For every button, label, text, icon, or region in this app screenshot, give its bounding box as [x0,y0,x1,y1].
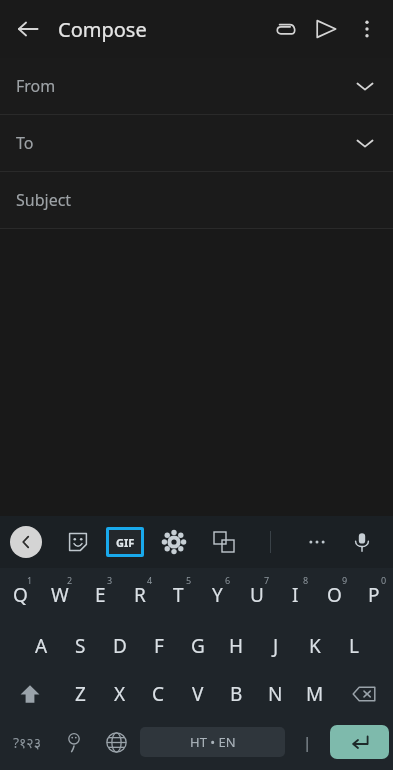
button[interactable]: Z [60,670,100,718]
button[interactable]: R [120,568,159,622]
button[interactable]: Enter [330,725,389,759]
staticText: E [95,582,106,608]
staticText: 8 [303,574,309,586]
button[interactable]: H [217,622,256,670]
staticText: 6 [225,574,231,586]
staticText: To [16,132,34,154]
button[interactable]: I [276,568,315,622]
button[interactable]: Q [0,568,40,622]
staticText: O [327,582,342,608]
button[interactable]: Backspace [334,670,393,718]
button[interactable]: To [0,115,393,171]
staticText: Subject [16,189,72,211]
button[interactable]: W [40,568,80,622]
button[interactable]: Subject [0,172,393,228]
button[interactable]: J [256,622,295,670]
button[interactable]: More [299,524,335,560]
staticText: K [309,633,321,659]
button[interactable]: X [100,670,139,718]
staticText: GIF [116,535,135,550]
button[interactable]: M [295,670,334,718]
staticText: V [192,681,204,707]
button[interactable]: K [295,622,334,670]
staticText: P [368,582,380,608]
button[interactable]: Send [305,8,347,50]
button[interactable]: Space [140,727,285,757]
button[interactable]: Settings [156,524,192,560]
staticText: 2 [67,574,73,586]
button[interactable]: Emoji [53,718,95,766]
button[interactable]: Voice input [343,523,381,561]
button[interactable]: C [139,670,178,718]
button[interactable]: A [21,622,61,670]
staticText: D [113,633,127,659]
button[interactable]: Back [6,7,50,51]
button[interactable]: E [80,568,120,622]
staticText: G [191,633,205,659]
staticText: J [273,633,279,659]
button[interactable]: V [178,670,217,718]
staticText: R [134,582,146,608]
staticText: 5 [186,574,192,586]
button[interactable]: O [315,568,354,622]
staticText: N [268,681,283,707]
staticText: ?१२३ [13,733,41,752]
staticText: 0 [381,574,387,586]
button[interactable]: More options [347,9,387,49]
staticText: L [349,633,359,659]
staticText: T [173,582,184,608]
staticText: F [154,633,164,659]
button[interactable]: B [217,670,256,718]
staticText: From [16,75,56,97]
staticText: H [229,633,244,659]
button[interactable]: Translate [206,524,242,560]
staticText: 4 [147,574,153,586]
button[interactable]: GIF [109,530,141,554]
staticText: U [250,582,264,608]
staticText: A [35,633,48,659]
button[interactable]: S [61,622,100,670]
staticText: | [303,732,312,752]
button[interactable]: Y [198,568,237,622]
button[interactable]: L [334,622,373,670]
staticText: W [51,582,69,608]
button[interactable]: Change language [95,718,137,766]
button[interactable]: D [100,622,139,670]
staticText: S [75,633,86,659]
button[interactable]: G [178,622,217,670]
button[interactable]: From [0,58,393,114]
button[interactable]: Attach file [263,8,305,50]
button[interactable]: T [159,568,198,622]
button[interactable]: ?१२३ [0,718,53,766]
staticText: HT • EN [190,733,236,751]
staticText: Q [13,582,28,608]
staticText: 1 [27,574,33,586]
staticText: B [230,681,243,707]
staticText: M [306,681,324,707]
staticText: Z [75,681,86,707]
button[interactable]: Stickers [60,524,96,560]
button[interactable]: U [237,568,276,622]
button[interactable]: P [354,568,393,622]
staticText: Compose [58,16,147,43]
staticText: 7 [264,574,270,586]
staticText: 3 [107,574,113,586]
staticText: C [152,681,165,707]
button[interactable]: F [139,622,178,670]
staticText: 9 [342,574,348,586]
button[interactable]: N [256,670,295,718]
button[interactable]: Shift [0,670,60,718]
button[interactable]: | [288,718,326,766]
button[interactable]: Collapse toolbar [10,526,42,558]
staticText: Y [212,582,223,608]
staticText: I [292,582,299,608]
staticText: X [114,681,126,707]
